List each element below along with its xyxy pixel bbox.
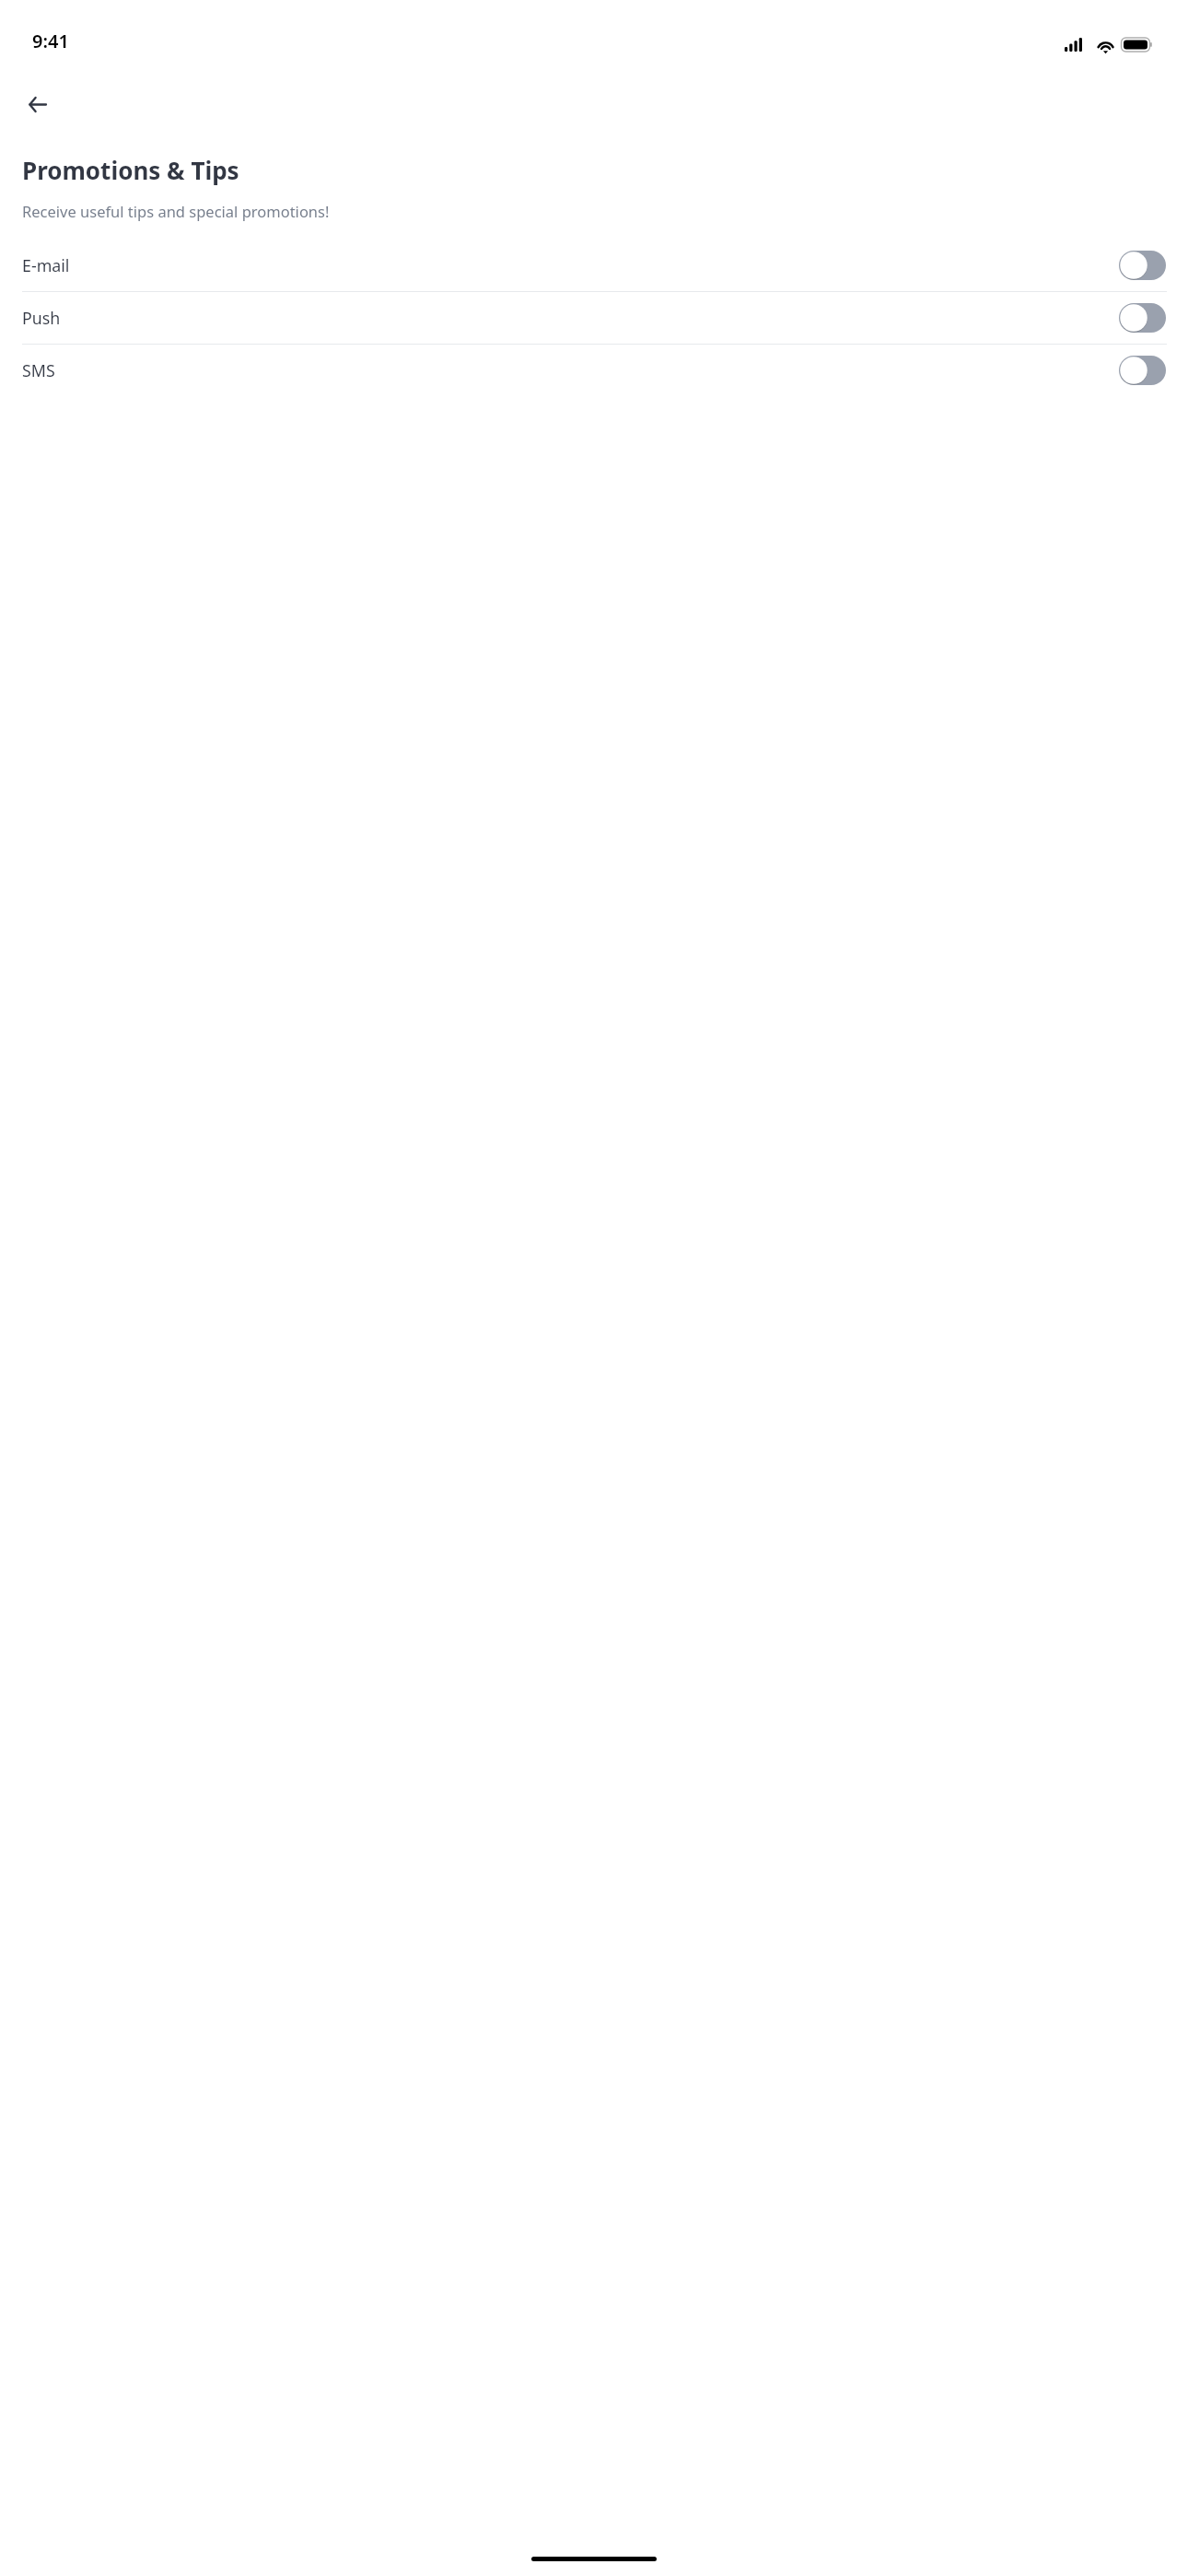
button[interactable]: SMS	[0, 345, 1188, 396]
staticText: Promotions & Tips	[22, 154, 239, 186]
staticText: E-mail	[22, 254, 1119, 276]
button[interactable]: Back	[11, 78, 63, 130]
staticText: Receive useful tips and special promotio…	[22, 201, 330, 221]
staticText: 9:41	[32, 29, 69, 53]
button[interactable]: Push	[0, 292, 1188, 344]
staticText: SMS	[22, 359, 1119, 381]
button[interactable]: E-mail	[0, 240, 1188, 291]
staticText: Push	[22, 307, 1119, 329]
